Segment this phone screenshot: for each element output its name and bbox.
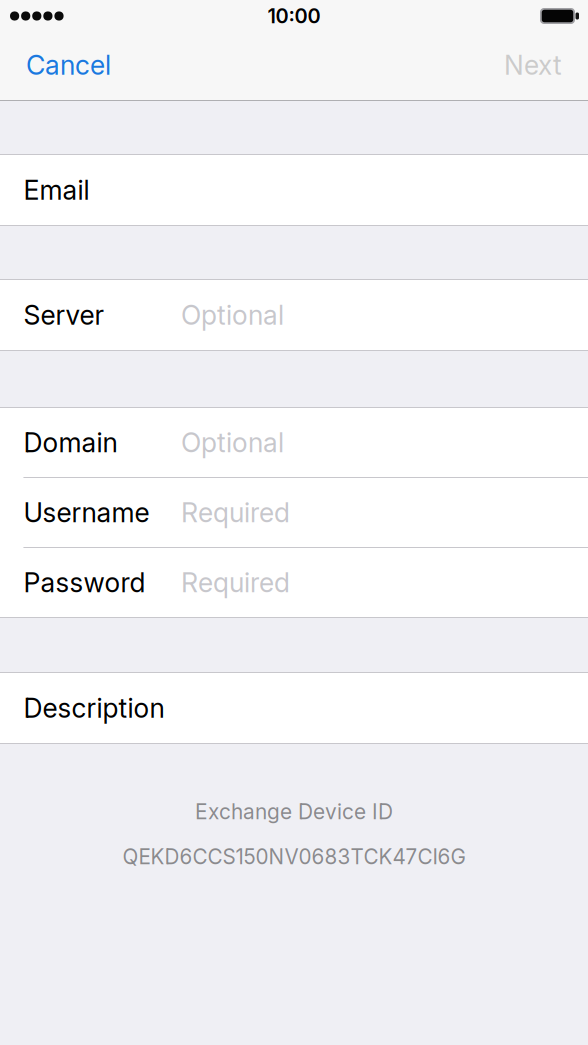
button[interactable]: Next bbox=[484, 40, 588, 90]
button[interactable]: Username bbox=[0, 478, 588, 547]
button[interactable]: Cancel bbox=[0, 40, 131, 90]
button[interactable]: Password bbox=[0, 548, 588, 617]
staticText: Password bbox=[23, 566, 145, 599]
staticText: Cancel bbox=[26, 49, 111, 81]
button[interactable]: Domain bbox=[0, 408, 588, 477]
button[interactable]: Server bbox=[0, 280, 588, 350]
staticText: Server bbox=[23, 299, 104, 331]
staticText: Optional bbox=[181, 426, 284, 459]
staticText: Username bbox=[23, 496, 149, 529]
staticText: Exchange Device ID bbox=[195, 799, 393, 824]
staticText: QEKD6CCS150NV0683TCK47CI6G bbox=[122, 844, 465, 869]
staticText: Domain bbox=[23, 426, 117, 459]
staticText: Required bbox=[181, 566, 290, 599]
button[interactable]: Email bbox=[0, 155, 588, 225]
staticText: Description bbox=[23, 692, 164, 724]
staticText: Email bbox=[23, 174, 89, 206]
staticText: Optional bbox=[181, 299, 284, 331]
staticText: Required bbox=[181, 496, 290, 529]
button[interactable]: Description bbox=[0, 673, 588, 743]
staticText: 10:00 bbox=[267, 4, 320, 28]
staticText: Next bbox=[504, 49, 562, 81]
